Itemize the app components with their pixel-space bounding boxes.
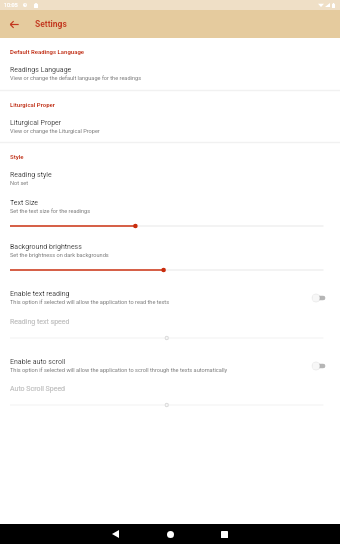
button[interactable]: Text Size — [0, 199, 340, 215]
staticText: Liturgical Proper — [10, 101, 55, 108]
staticText: View or change the default language for … — [10, 75, 142, 82]
button[interactable]: Reading style — [0, 171, 340, 187]
button[interactable]: Back — [2, 12, 26, 36]
button[interactable]: Recent apps — [214, 524, 234, 544]
button[interactable]: Background brightness — [0, 243, 340, 259]
staticText: View or change the Liturgical Proper — [10, 128, 100, 135]
staticText: Auto Scroll Speed — [10, 385, 66, 393]
staticText: Default Readings Language — [10, 48, 85, 55]
button[interactable] — [0, 401, 340, 409]
staticText: Enable text reading — [10, 290, 70, 298]
button[interactable]: Enable text reading — [0, 290, 340, 306]
button[interactable]: Readings Language — [0, 66, 340, 82]
button[interactable] — [0, 266, 340, 274]
staticText: Reading text speed — [10, 318, 70, 326]
staticText: Readings Language — [10, 66, 72, 74]
staticText: Set the text size for the readings — [10, 208, 91, 215]
button[interactable] — [0, 334, 340, 342]
staticText: Enable auto scroll — [10, 358, 66, 366]
staticText: Style — [10, 153, 24, 160]
button[interactable]: Home — [160, 524, 180, 544]
button[interactable] — [0, 222, 340, 230]
staticText: Reading style — [10, 171, 52, 179]
button[interactable]: Liturgical Proper — [0, 119, 340, 135]
button[interactable]: Enable auto scroll — [0, 358, 340, 374]
staticText: Set the brightness on dark backgrounds — [10, 252, 109, 259]
staticText: 10:05 — [4, 2, 18, 8]
staticText: Text Size — [10, 199, 39, 207]
staticText: Liturgical Proper — [10, 119, 62, 127]
staticText: Settings — [35, 19, 67, 29]
staticText: This option if selected will allow the a… — [10, 299, 170, 306]
staticText: Background brightness — [10, 243, 82, 251]
staticText: This option if selected will allow the a… — [10, 367, 228, 374]
staticText: Not set — [10, 180, 29, 187]
button[interactable]: Back — [105, 524, 125, 544]
